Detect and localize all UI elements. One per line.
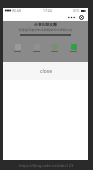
button[interactable]: Share target <box>51 44 58 52</box>
button[interactable]: Share target <box>70 44 77 52</box>
button[interactable]: Close <box>77 13 85 21</box>
button[interactable]: More options <box>67 13 76 21</box>
staticText: 83% <box>73 9 80 13</box>
staticText: 分享到朋友圈 <box>34 22 57 27</box>
staticText: 17:24 <box>43 8 52 13</box>
staticText: WLAN <box>12 9 22 13</box>
staticText: close <box>40 68 52 75</box>
staticText: 长按保存图片到手机相册后分享给好友 <box>18 28 73 32</box>
button[interactable]: Share target <box>14 44 21 52</box>
button[interactable]: close <box>3 62 88 80</box>
button[interactable]: Share target <box>33 44 40 52</box>
staticText: https://blog.csdn.net/abc123 <box>19 163 74 168</box>
